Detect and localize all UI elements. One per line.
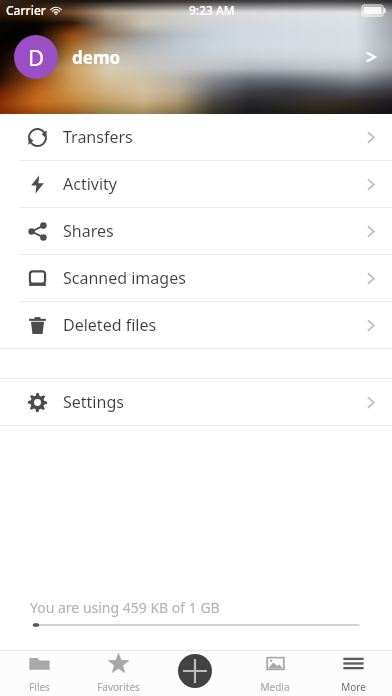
staticText: Shares [63,220,114,242]
button[interactable]: Deleted files [0,302,392,348]
staticText: More [341,680,366,694]
staticText: Carrier [6,2,46,18]
staticText: Activity [63,173,118,195]
staticText: Transfers [63,126,133,148]
button[interactable]: Add [178,654,212,688]
staticText: demo [72,46,121,69]
staticText: You are using 459 KB of 1 GB [30,598,220,617]
button[interactable]: Files [0,650,79,696]
staticText: Media [260,680,290,694]
staticText: 9:23 AM [189,2,235,18]
staticText: Settings [63,391,124,413]
button[interactable]: Transfers [0,114,392,160]
button[interactable]: Settings [0,379,392,425]
button[interactable]: D [0,30,392,84]
staticText: Scanned images [63,267,186,289]
button[interactable]: Shares [0,208,392,254]
staticText: Deleted files [63,314,157,336]
button[interactable]: Activity [0,161,392,207]
button[interactable]: Media [236,650,314,696]
staticText: Favorites [97,680,140,694]
button[interactable]: Favorites [79,650,158,696]
staticText: D [28,42,45,72]
button[interactable]: More [314,650,392,696]
button[interactable]: Scanned images [0,255,392,301]
staticText: Files [29,680,50,694]
